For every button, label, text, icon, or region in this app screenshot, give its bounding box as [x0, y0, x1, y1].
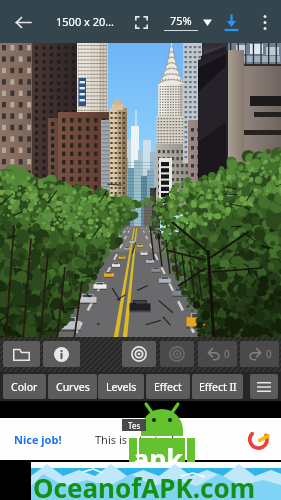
- button[interactable]: Deselect: [160, 341, 194, 367]
- staticText: Nice job!: [14, 432, 62, 447]
- button[interactable]: Save: [212, 3, 250, 41]
- staticText: apk: [133, 440, 183, 477]
- button[interactable]: Nice job!: [0, 418, 281, 460]
- button[interactable]: Color: [3, 374, 46, 399]
- staticText: Curves: [56, 380, 90, 394]
- staticText: Tes: [128, 420, 141, 431]
- staticText: 0: [224, 347, 230, 361]
- button[interactable]: Fit to screen: [126, 7, 156, 37]
- button[interactable]: Selection: [122, 341, 156, 367]
- button[interactable]: Info: [43, 341, 80, 367]
- staticText: Effect: [154, 380, 182, 394]
- button[interactable]: Menu: [250, 374, 278, 399]
- button[interactable]: Levels: [98, 374, 144, 399]
- button[interactable]: Effect II: [192, 374, 243, 399]
- staticText: Levels: [106, 380, 137, 394]
- button[interactable]: Redo: [240, 341, 279, 367]
- button[interactable]: Undo: [198, 341, 237, 367]
- button[interactable]: Curves: [48, 374, 97, 399]
- staticText: 1500 x 20…: [56, 14, 114, 29]
- button[interactable]: Open file: [3, 341, 40, 367]
- staticText: Color: [11, 380, 38, 394]
- staticText: 75%: [170, 13, 192, 28]
- staticText: Effect II: [199, 380, 237, 394]
- button[interactable]: Back: [6, 5, 40, 39]
- button[interactable]: More options: [250, 7, 280, 37]
- button[interactable]: Effect: [146, 374, 190, 399]
- button[interactable]: Zoom level: [164, 13, 212, 31]
- staticText: This is a test ad.: [95, 432, 178, 447]
- staticText: 0: [266, 347, 272, 361]
- staticText: OceanofAPK.com: [33, 470, 256, 500]
